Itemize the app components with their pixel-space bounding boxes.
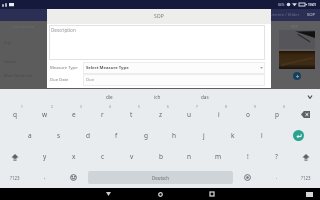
button[interactable]: k (218, 125, 247, 146)
button[interactable]: Due (83, 74, 265, 86)
button[interactable]: Backspace (291, 104, 320, 125)
button[interactable]: das (181, 89, 229, 104)
button[interactable]: b (146, 146, 175, 167)
staticText: 2 (51, 105, 53, 109)
staticText: 8 (225, 105, 227, 109)
staticText: 6 (167, 105, 169, 109)
button[interactable]: Recent apps (197, 188, 227, 200)
button[interactable]: Description (49, 25, 265, 60)
button[interactable]: y (30, 146, 59, 167)
button[interactable]: v (117, 146, 146, 167)
button[interactable]: ?123 (0, 167, 30, 188)
staticText: Mein Nachricht (4, 73, 33, 78)
button[interactable]: Voice input (233, 167, 262, 188)
staticText: ?123 (10, 175, 20, 181)
button[interactable]: x (59, 146, 88, 167)
button[interactable]: ?123 (291, 167, 320, 188)
staticText: i (218, 110, 220, 119)
button[interactable]: 7 (175, 104, 204, 125)
button[interactable]: n (175, 146, 204, 167)
staticText: ! (247, 152, 249, 161)
staticText: Sop (4, 40, 12, 45)
staticText: Dokumente / Bilder (261, 12, 300, 18)
staticText: 4 (109, 105, 111, 109)
button[interactable]: l (247, 125, 276, 146)
button[interactable]: ! (233, 146, 262, 167)
button[interactable]: Shift (0, 146, 30, 167)
button[interactable]: 3 (59, 104, 88, 125)
staticText: Description (51, 27, 76, 33)
button[interactable]: a (15, 125, 44, 146)
staticText: n (187, 152, 192, 161)
button[interactable]: Select Measure Type (83, 62, 265, 74)
staticText: Due Date (50, 77, 69, 83)
button[interactable]: 5 (117, 104, 146, 125)
button[interactable]: 8 (204, 104, 233, 125)
staticText: SOP (307, 12, 316, 18)
staticText: r (101, 110, 104, 119)
staticText: ich (154, 94, 161, 100)
staticText: Deutsch (152, 175, 169, 181)
button[interactable]: Enter (276, 125, 320, 146)
staticText: ?123 (301, 175, 311, 181)
button[interactable]: More suggestions (300, 89, 320, 104)
button[interactable]: Deutsch (88, 171, 233, 184)
button[interactable]: Emoji (59, 167, 88, 188)
button[interactable]: f (102, 125, 131, 146)
staticText: y (43, 152, 47, 161)
staticText: das (201, 94, 209, 100)
button[interactable]: d (73, 125, 102, 146)
button[interactable]: Photo 1 (279, 30, 315, 49)
staticText: 5 (138, 105, 140, 109)
staticText: 84% (278, 3, 285, 7)
button[interactable]: s (44, 125, 73, 146)
button[interactable]: Add photo (293, 72, 301, 80)
button[interactable]: g (131, 125, 160, 146)
button[interactable]: 2 (30, 104, 59, 125)
staticText: x (72, 152, 76, 161)
button[interactable]: 1 (0, 104, 30, 125)
staticText: v (130, 152, 134, 161)
staticText: 0 (283, 105, 285, 109)
staticText: d (86, 131, 90, 140)
staticText: p (275, 110, 279, 119)
staticText: q (13, 110, 17, 119)
button[interactable]: Hide keyboard (93, 188, 123, 200)
staticText: . (276, 174, 278, 181)
button[interactable]: ? (262, 146, 291, 167)
button[interactable]: Shift right (291, 146, 320, 167)
button[interactable]: h (160, 125, 189, 146)
staticText: Select Measure Type (86, 65, 129, 71)
button[interactable]: m (204, 146, 233, 167)
button[interactable]: 4 (88, 104, 117, 125)
button[interactable]: j (189, 125, 218, 146)
button[interactable]: die (85, 89, 133, 104)
button[interactable]: ich (133, 89, 181, 104)
button[interactable]: c (88, 146, 117, 167)
staticText: b (159, 152, 163, 161)
staticText: SOP (291, 24, 298, 29)
button[interactable]: 9 (233, 104, 262, 125)
staticText: m (215, 152, 222, 161)
button[interactable]: Home (145, 188, 175, 200)
staticText: u (187, 110, 192, 119)
staticText: 9 (254, 105, 256, 109)
staticText: l (261, 131, 263, 140)
staticText: Dokumente (12, 24, 35, 29)
button[interactable]: 0 (262, 104, 291, 125)
staticText: z (159, 110, 163, 119)
button[interactable]: 6 (146, 104, 175, 125)
staticText: Gerate (4, 59, 17, 64)
staticText: k (231, 131, 235, 140)
staticText: die (106, 94, 113, 100)
button[interactable]: Photo 2 (279, 51, 315, 69)
staticText: o (246, 110, 250, 119)
staticText: c (101, 152, 105, 161)
button[interactable]: Switch keyboard (305, 188, 313, 200)
staticText: t (130, 110, 133, 119)
